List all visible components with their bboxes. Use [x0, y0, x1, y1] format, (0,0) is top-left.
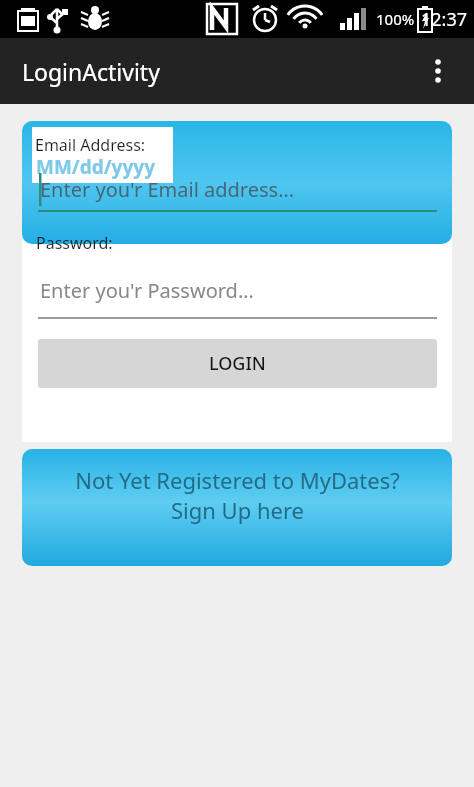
staticText: 100%	[376, 9, 415, 29]
staticText: Enter you'r Password…	[40, 277, 254, 304]
button[interactable]: More options	[414, 47, 462, 95]
staticText: MyDates	[36, 132, 142, 165]
staticText: Password:	[36, 232, 113, 254]
button[interactable]: Not Yet Registered to MyDates? Sign Up h…	[22, 449, 452, 566]
staticText: Not Yet Registered to MyDates? Sign Up h…	[75, 465, 400, 525]
button[interactable]: LOGIN	[38, 339, 437, 388]
staticText: 12:37	[421, 7, 468, 32]
staticText: LOGIN	[209, 351, 266, 376]
staticText: LoginActivity	[22, 56, 160, 87]
staticText: Enter you'r Email address…	[40, 176, 294, 203]
staticText: MM/dd/yyyy	[36, 154, 156, 180]
staticText: Email Address:	[35, 134, 146, 156]
